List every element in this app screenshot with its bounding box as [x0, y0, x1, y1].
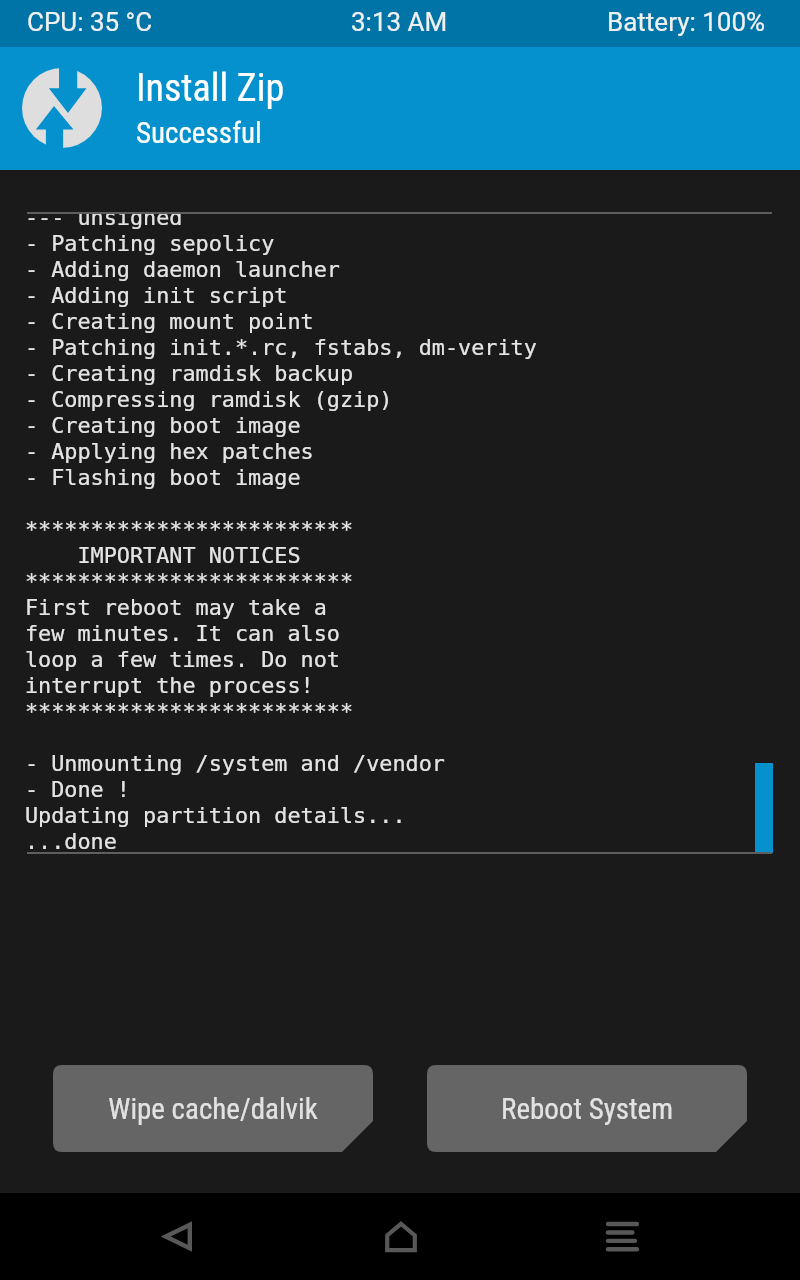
staticText: Wipe cache/dalvik	[108, 1092, 318, 1126]
staticText: Reboot System	[501, 1092, 673, 1126]
staticText: Battery: 100%	[607, 7, 766, 37]
button[interactable]: Wipe cache/dalvik	[53, 1065, 373, 1152]
button[interactable]: Back	[117, 1193, 238, 1280]
staticText: CPU: 35 °C	[27, 7, 153, 37]
staticText: Install Zip	[136, 66, 285, 111]
button[interactable]: Home	[340, 1193, 461, 1280]
button[interactable]: Recent apps	[562, 1193, 683, 1280]
staticText: --- unsigned - Patching sepolicy - Addin…	[25, 212, 537, 845]
staticText: 3:13 AM	[351, 7, 448, 37]
button[interactable]: Reboot System	[427, 1065, 747, 1152]
staticText: Successful	[136, 116, 262, 150]
